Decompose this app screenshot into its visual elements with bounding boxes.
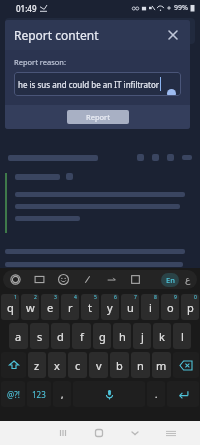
staticText: 6 bbox=[114, 294, 117, 301]
staticText: 01:49 bbox=[16, 3, 37, 14]
staticText: x bbox=[54, 358, 60, 373]
button[interactable]: v bbox=[89, 352, 108, 378]
button[interactable]: Text mode bbox=[129, 273, 142, 286]
staticText: c bbox=[75, 358, 81, 373]
staticText: d bbox=[57, 329, 64, 344]
button[interactable]: Report bbox=[67, 110, 129, 124]
button[interactable]: Recents bbox=[45, 421, 81, 445]
staticText: a bbox=[15, 329, 22, 344]
button[interactable]: 9 bbox=[161, 294, 179, 320]
staticText: he is sus and could be an IT infiltrator bbox=[18, 79, 160, 90]
button[interactable]: En bbox=[161, 273, 179, 287]
button[interactable]: g bbox=[93, 323, 111, 349]
button[interactable]: j bbox=[133, 323, 151, 349]
button[interactable]: n bbox=[131, 352, 150, 378]
button[interactable]: 0 bbox=[181, 294, 199, 320]
staticText: w bbox=[26, 300, 35, 315]
staticText: v bbox=[96, 358, 102, 373]
staticText: Report bbox=[86, 112, 110, 122]
staticText: k bbox=[159, 329, 165, 344]
button[interactable]: z bbox=[28, 352, 46, 378]
button[interactable]: @?! bbox=[1, 381, 25, 407]
staticText: 9 bbox=[174, 294, 177, 301]
staticText: 1 bbox=[14, 294, 17, 301]
staticText: y bbox=[107, 300, 113, 315]
staticText: 4 bbox=[74, 294, 77, 301]
button[interactable]: a bbox=[9, 323, 28, 349]
button[interactable]: Home bbox=[81, 421, 117, 445]
button[interactable]: f bbox=[72, 323, 91, 349]
button[interactable]: Settings bbox=[9, 273, 22, 286]
staticText: . bbox=[155, 388, 158, 400]
staticText: b bbox=[116, 358, 123, 373]
staticText: u bbox=[127, 300, 134, 315]
button[interactable]: 6 bbox=[101, 294, 119, 320]
staticText: h bbox=[119, 329, 126, 344]
staticText: g bbox=[99, 329, 106, 344]
button[interactable]: Voice input bbox=[73, 381, 145, 407]
button[interactable]: Clipboard bbox=[33, 273, 46, 286]
staticText: , bbox=[61, 388, 64, 400]
staticText: 0 bbox=[194, 294, 197, 301]
button[interactable]: 3 bbox=[41, 294, 59, 320]
button[interactable]: Close bbox=[165, 27, 181, 43]
staticText: 8 bbox=[154, 294, 157, 301]
staticText: e bbox=[47, 300, 54, 315]
staticText: s bbox=[37, 329, 43, 344]
button[interactable]: x bbox=[48, 352, 66, 378]
button[interactable]: h bbox=[113, 323, 131, 349]
button[interactable]: Back bbox=[117, 421, 153, 445]
button[interactable]: . bbox=[147, 381, 165, 407]
staticText: q bbox=[7, 300, 14, 315]
staticText: 3 bbox=[54, 294, 57, 301]
button[interactable]: k bbox=[153, 323, 171, 349]
staticText: 2 bbox=[34, 294, 37, 301]
staticText: 5 bbox=[94, 294, 97, 301]
staticText: Report content bbox=[14, 27, 99, 43]
button[interactable]: Handwriting bbox=[81, 273, 94, 286]
button[interactable]: b bbox=[110, 352, 129, 378]
button[interactable]: Shift bbox=[1, 352, 26, 378]
button[interactable]: Enter bbox=[167, 381, 199, 407]
staticText: f bbox=[80, 329, 84, 344]
button[interactable]: s bbox=[30, 323, 49, 349]
button[interactable]: 123 bbox=[27, 381, 51, 407]
button[interactable]: 8 bbox=[141, 294, 159, 320]
staticText: j bbox=[141, 329, 144, 344]
button[interactable]: Backspace bbox=[173, 352, 199, 378]
staticText: m bbox=[156, 358, 167, 373]
staticText: l bbox=[181, 329, 184, 344]
staticText: 7 bbox=[134, 294, 137, 301]
button[interactable]: , bbox=[53, 381, 71, 407]
button[interactable]: Translate bbox=[105, 273, 118, 286]
button[interactable]: 4 bbox=[61, 294, 79, 320]
staticText: p bbox=[187, 300, 194, 315]
staticText: 99% bbox=[174, 3, 188, 13]
staticText: t bbox=[88, 300, 92, 315]
staticText: En bbox=[166, 275, 175, 285]
staticText: 123 bbox=[32, 389, 46, 400]
button[interactable]: c bbox=[68, 352, 87, 378]
button[interactable]: he is sus and could be an IT infiltrator bbox=[14, 72, 181, 96]
staticText: i bbox=[149, 300, 152, 315]
button[interactable]: 1 bbox=[1, 294, 19, 320]
staticText: o bbox=[167, 300, 174, 315]
button[interactable]: Hide keyboard bbox=[153, 421, 189, 445]
button[interactable]: d bbox=[51, 323, 70, 349]
button[interactable]: 5 bbox=[81, 294, 99, 320]
button[interactable]: m bbox=[152, 352, 171, 378]
button[interactable]: 7 bbox=[121, 294, 139, 320]
button[interactable]: 2 bbox=[21, 294, 39, 320]
staticText: @?! bbox=[7, 389, 20, 400]
staticText: r bbox=[68, 300, 73, 315]
staticText: ع bbox=[185, 275, 191, 285]
button[interactable]: l bbox=[173, 323, 191, 349]
staticText: Report reason: bbox=[14, 57, 66, 67]
staticText: z bbox=[34, 358, 40, 373]
button[interactable]: Emoji bbox=[57, 273, 70, 286]
staticText: n bbox=[137, 358, 144, 373]
